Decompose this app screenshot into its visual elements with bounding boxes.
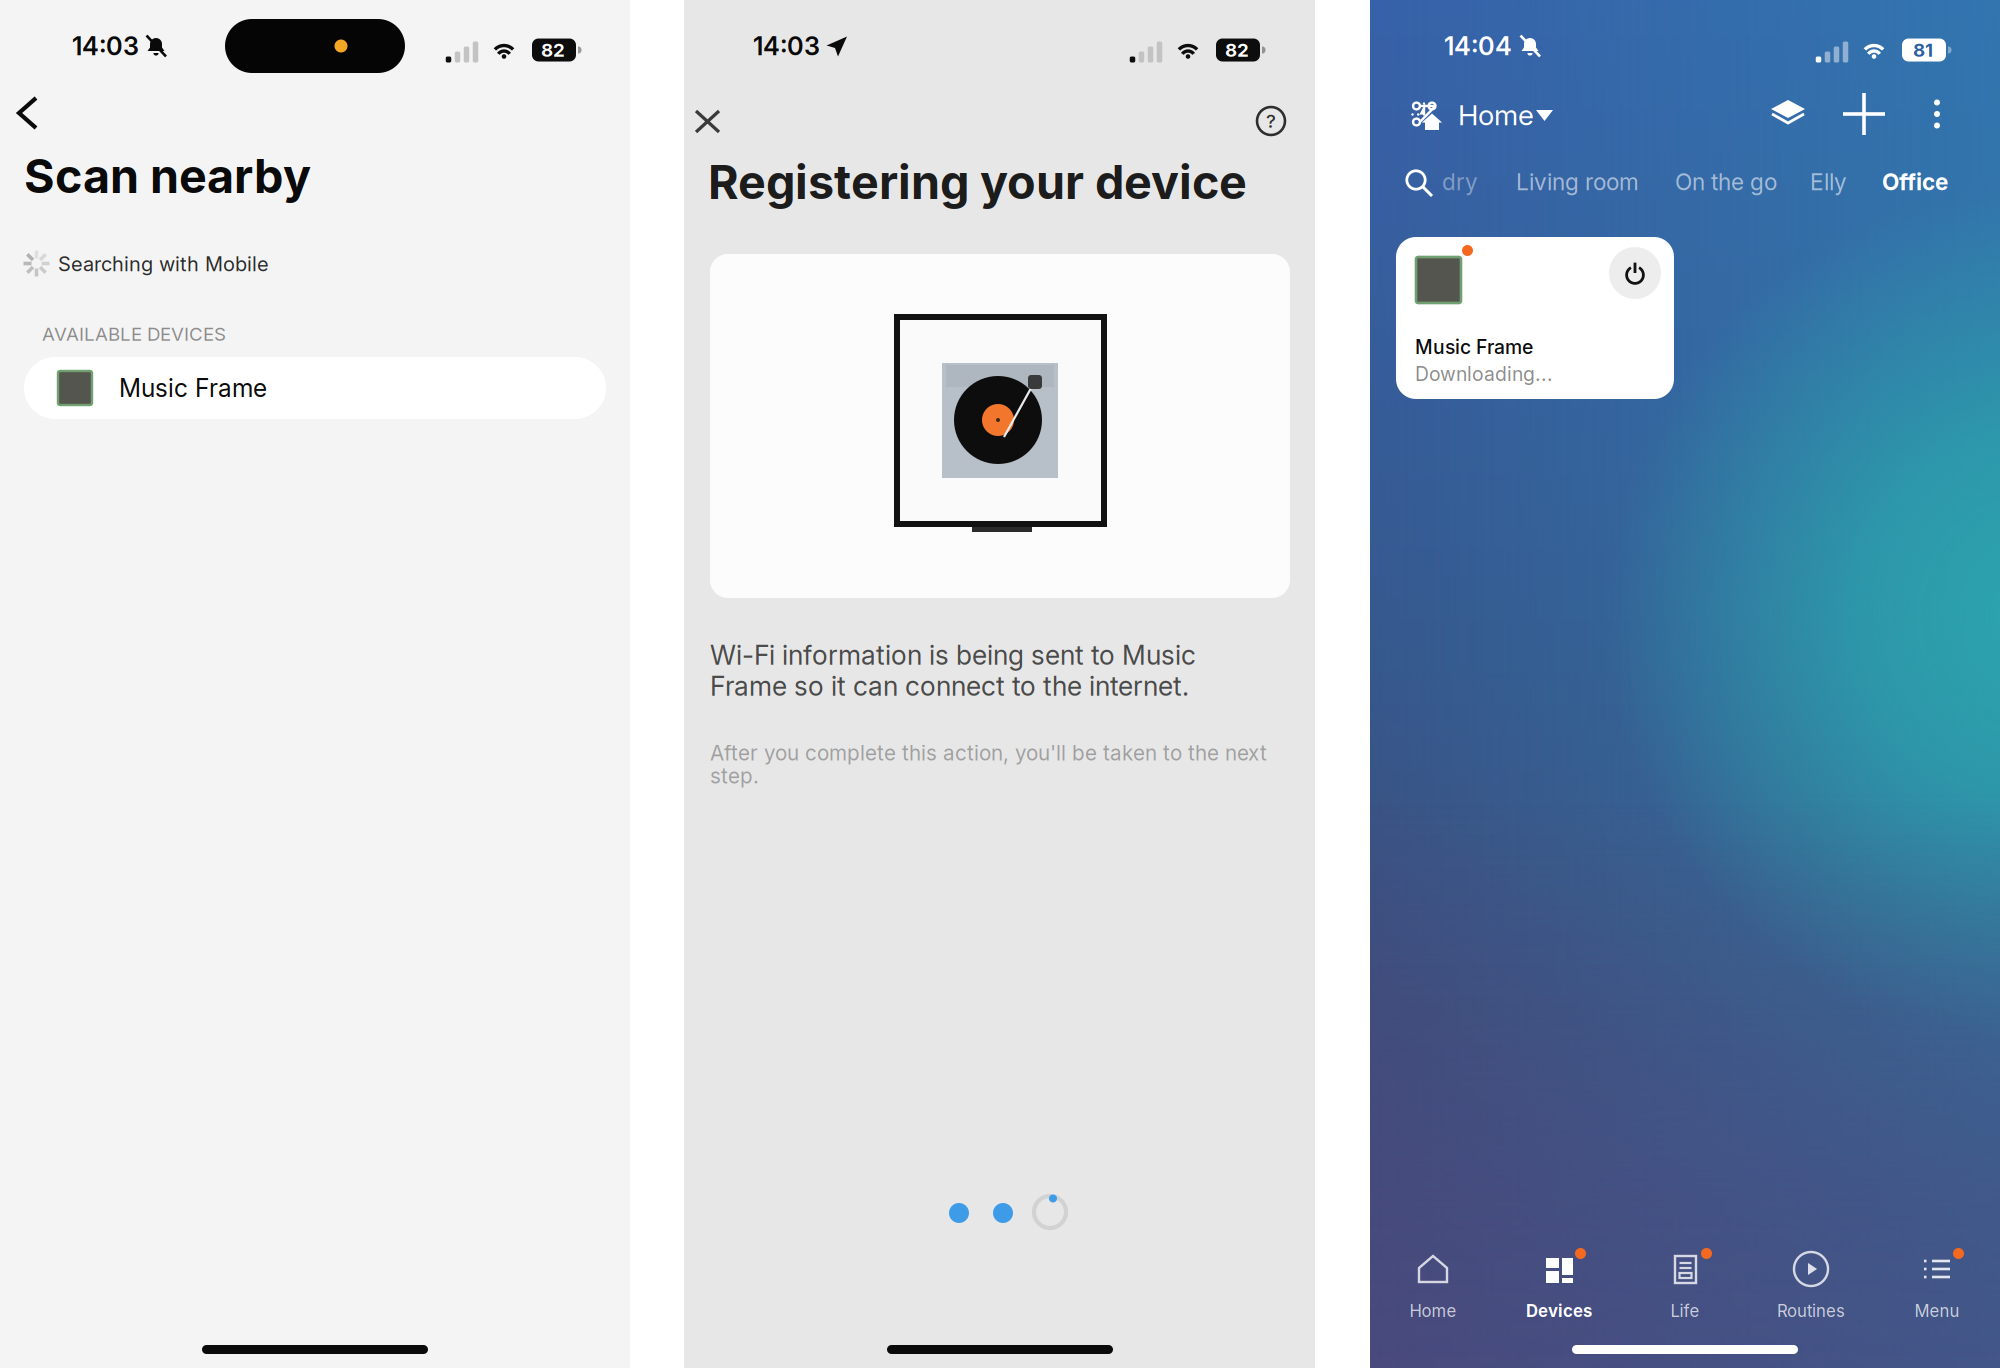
staticText: Home <box>1409 1301 1456 1321</box>
button[interactable]: Home <box>1370 1238 1496 1334</box>
button[interactable]: dry <box>1442 160 1498 204</box>
button[interactable]: Add device <box>1838 88 1890 140</box>
button[interactable]: Elly <box>1810 160 1858 204</box>
button[interactable]: Help <box>1257 107 1285 135</box>
staticText: step. <box>710 763 759 788</box>
staticText: 82 <box>1225 39 1249 61</box>
button[interactable]: Back <box>0 80 60 146</box>
staticText: Routines <box>1777 1301 1845 1321</box>
button[interactable]: Office <box>1882 160 1962 204</box>
staticText: dry <box>1442 168 1478 196</box>
button[interactable]: On the go <box>1675 160 1783 204</box>
staticText: Wi-Fi information is being sent to Music <box>710 639 1196 671</box>
staticText: Scan nearby <box>24 148 311 204</box>
button[interactable]: Living room <box>1516 160 1644 204</box>
staticText: ? <box>1266 110 1276 132</box>
staticText: Home <box>1458 98 1534 132</box>
button[interactable]: Close <box>684 90 754 160</box>
staticText: 14:03 <box>753 31 820 61</box>
staticText: 14:04 <box>1444 31 1512 61</box>
staticText: Menu <box>1914 1301 1959 1321</box>
button[interactable]: Home locations <box>1410 100 1442 132</box>
staticText: On the go <box>1675 168 1777 196</box>
staticText: Registering your device <box>708 154 1247 210</box>
staticText: Downloading... <box>1415 362 1553 386</box>
staticText: Living room <box>1516 168 1639 196</box>
staticText: Searching with Mobile <box>58 252 269 276</box>
button[interactable]: Switch home <box>1536 110 1553 122</box>
button[interactable]: More options <box>1934 99 1940 128</box>
staticText: 81 <box>1913 39 1933 61</box>
button[interactable]: Devices <box>1496 1238 1622 1334</box>
button[interactable]: 3D view <box>1766 96 1810 134</box>
staticText: Devices <box>1526 1301 1592 1321</box>
staticText: After you complete this action, you'll b… <box>710 740 1267 765</box>
button[interactable]: Routines <box>1748 1238 1874 1334</box>
button[interactable]: Music Frame <box>1396 237 1674 399</box>
staticText: AVAILABLE DEVICES <box>42 323 226 345</box>
staticText: Life <box>1670 1301 1699 1321</box>
button[interactable]: Life <box>1622 1238 1748 1334</box>
button[interactable]: Search <box>1402 166 1436 200</box>
staticText: Elly <box>1810 168 1847 196</box>
staticText: Frame so it can connect to the internet. <box>710 670 1189 702</box>
staticText: 82 <box>541 39 565 61</box>
staticText: Music Frame <box>119 373 267 403</box>
button[interactable]: Menu <box>1874 1238 2000 1334</box>
button[interactable]: Music Frame <box>24 357 606 419</box>
staticText: Music Frame <box>1415 335 1533 359</box>
staticText: Office <box>1882 168 1948 196</box>
staticText: 14:03 <box>72 31 139 61</box>
button[interactable]: Home <box>1458 95 1548 135</box>
